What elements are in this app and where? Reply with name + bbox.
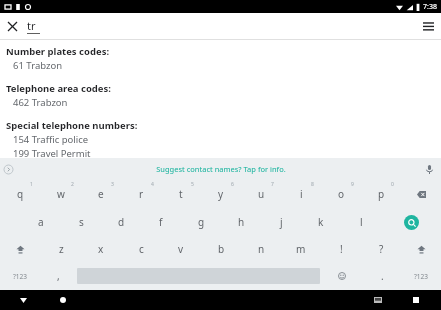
- button[interactable]: Close keyboard: [14, 291, 32, 309]
- button[interactable]: f: [141, 208, 181, 236]
- button[interactable]: ?123: [0, 262, 40, 290]
- button[interactable]: d: [101, 208, 141, 236]
- button[interactable]: Voice input: [422, 162, 436, 176]
- button[interactable]: j: [261, 208, 301, 236]
- staticText: q: [17, 187, 24, 201]
- button[interactable]: .: [364, 262, 401, 290]
- staticText: ?123: [13, 272, 27, 281]
- staticText: k: [318, 215, 324, 229]
- button[interactable]: x: [81, 236, 121, 262]
- button[interactable]: 2: [41, 180, 81, 208]
- staticText: 5: [191, 181, 194, 188]
- button[interactable]: 6: [201, 180, 241, 208]
- button[interactable]: h: [221, 208, 261, 236]
- button[interactable]: 4: [121, 180, 161, 208]
- staticText: 2: [71, 181, 74, 188]
- button[interactable]: l: [341, 208, 381, 236]
- staticText: .: [381, 269, 384, 283]
- staticText: m: [296, 242, 306, 256]
- staticText: tr: [27, 18, 36, 33]
- staticText: 7:38: [423, 2, 437, 12]
- staticText: n: [258, 242, 265, 256]
- button[interactable]: b: [201, 236, 241, 262]
- button[interactable]: 1: [0, 180, 41, 208]
- staticText: v: [178, 242, 184, 256]
- button[interactable]: Search: [381, 208, 441, 236]
- staticText: 4: [151, 181, 154, 188]
- staticText: y: [218, 187, 224, 201]
- staticText: 8: [311, 181, 314, 188]
- button[interactable]: m: [281, 236, 321, 262]
- staticText: f: [159, 215, 163, 229]
- staticText: l: [360, 215, 363, 229]
- staticText: 0: [391, 181, 394, 188]
- button[interactable]: 7: [241, 180, 281, 208]
- staticText: w: [57, 187, 65, 201]
- button[interactable]: k: [301, 208, 341, 236]
- staticText: 462 Trabzon: [13, 96, 68, 109]
- button[interactable]: Expand suggestions: [1, 162, 15, 176]
- staticText: t: [179, 187, 183, 201]
- button[interactable]: ?123: [401, 262, 441, 290]
- button[interactable]: ?: [361, 236, 401, 262]
- button[interactable]: Emoji: [320, 262, 364, 290]
- staticText: 6: [231, 181, 234, 188]
- button[interactable]: Recent apps: [407, 291, 425, 309]
- button[interactable]: Shift: [401, 236, 441, 262]
- button[interactable]: v: [161, 236, 201, 262]
- button[interactable]: Clear search: [0, 14, 24, 38]
- button[interactable]: Number plates codes:: [6, 45, 441, 72]
- staticText: Special telephone numbers:: [6, 119, 138, 132]
- button[interactable]: Shift: [0, 236, 41, 262]
- staticText: c: [139, 242, 144, 256]
- staticText: x: [98, 242, 104, 256]
- staticText: 1: [30, 181, 33, 188]
- staticText: j: [280, 215, 283, 229]
- button[interactable]: Suggest contact names? Tap for info.: [156, 164, 286, 174]
- staticText: Telephone area codes:: [6, 82, 111, 95]
- staticText: e: [98, 187, 104, 201]
- staticText: b: [218, 242, 225, 256]
- button[interactable]: Home: [54, 291, 72, 309]
- staticText: ,: [57, 269, 60, 283]
- staticText: 9: [351, 181, 354, 188]
- staticText: Suggest contact names? Tap for info.: [156, 164, 286, 174]
- staticText: 3: [111, 181, 114, 188]
- staticText: g: [198, 215, 205, 229]
- button[interactable]: z: [41, 236, 81, 262]
- button[interactable]: 0: [361, 180, 401, 208]
- staticText: 199 Travel Permit: [13, 147, 91, 158]
- staticText: 7: [271, 181, 274, 188]
- button[interactable]: 8: [281, 180, 321, 208]
- staticText: z: [59, 242, 64, 256]
- staticText: h: [238, 215, 245, 229]
- button[interactable]: ,: [40, 262, 77, 290]
- button[interactable]: Menu: [415, 13, 441, 39]
- staticText: d: [118, 215, 125, 229]
- button[interactable]: Special telephone numbers:: [6, 119, 441, 158]
- button[interactable]: g: [181, 208, 221, 236]
- staticText: 154 Traffic police: [13, 133, 89, 146]
- button[interactable]: 5: [161, 180, 201, 208]
- button[interactable]: Backspace: [401, 180, 441, 208]
- button[interactable]: n: [241, 236, 281, 262]
- staticText: ?123: [414, 272, 428, 281]
- staticText: 61 Trabzon: [13, 59, 63, 72]
- staticText: !: [340, 242, 343, 256]
- button[interactable]: !: [321, 236, 361, 262]
- staticText: s: [79, 215, 84, 229]
- staticText: p: [378, 187, 385, 201]
- button[interactable]: a: [21, 208, 61, 236]
- button[interactable]: 3: [81, 180, 121, 208]
- button[interactable]: Switch keyboard: [369, 291, 387, 309]
- button[interactable]: s: [61, 208, 101, 236]
- staticText: u: [258, 187, 265, 201]
- staticText: o: [338, 187, 345, 201]
- staticText: Number plates codes:: [6, 45, 110, 58]
- button[interactable]: 9: [321, 180, 361, 208]
- button[interactable]: c: [121, 236, 161, 262]
- staticText: i: [300, 187, 303, 201]
- button[interactable]: Telephone area codes:: [6, 82, 441, 109]
- staticText: ?: [379, 242, 384, 256]
